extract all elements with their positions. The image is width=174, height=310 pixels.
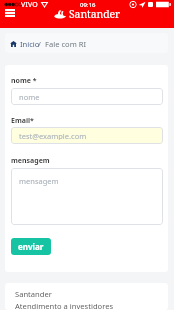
button[interactable]: Início <box>10 39 40 49</box>
button[interactable]: test@example.com <box>11 127 163 144</box>
staticText: Santander <box>69 7 120 21</box>
staticText: Atendimento a investidores <box>15 301 114 310</box>
staticText: nome <box>19 92 40 101</box>
staticText: Fale com RI <box>45 39 87 49</box>
staticText: mensagem <box>11 156 50 166</box>
staticText: Email* <box>11 116 34 126</box>
staticText: nome * <box>11 76 37 86</box>
staticText: test@example.com <box>19 131 87 140</box>
staticText: VIVO <box>21 0 38 9</box>
staticText: / <box>38 39 41 49</box>
staticText: Santander <box>15 289 52 299</box>
staticText: Início <box>20 39 40 49</box>
staticText: 09:16 <box>80 1 96 9</box>
staticText: enviar <box>18 241 44 252</box>
button[interactable]: mensagem <box>11 168 163 225</box>
button[interactable]: enviar <box>11 238 51 255</box>
staticText: mensagem <box>19 176 59 186</box>
button[interactable]: nome <box>11 88 163 105</box>
button[interactable]: Menu <box>3 9 16 22</box>
